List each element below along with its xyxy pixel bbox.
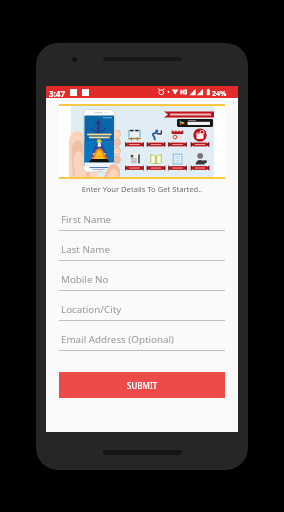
staticText: Last Name — [61, 243, 111, 256]
staticText: Location/City — [61, 303, 122, 316]
button[interactable]: Mobile No — [59, 261, 225, 291]
button[interactable]: First Name — [59, 201, 225, 231]
staticText: Mobile No — [61, 273, 109, 286]
staticText: 24% — [212, 89, 227, 99]
staticText: SUBMIT — [127, 380, 158, 391]
staticText: Email Address (Optional) — [61, 333, 174, 346]
button[interactable]: Last Name — [59, 231, 225, 261]
staticText: Enter Your Details To Get Started.. — [46, 184, 238, 194]
button[interactable]: Location/City — [59, 291, 225, 321]
button[interactable]: Email Address (Optional) — [59, 321, 225, 351]
button[interactable]: SUBMIT — [59, 372, 225, 398]
staticText: First Name — [61, 213, 112, 226]
staticText: 3:47 — [49, 88, 65, 99]
